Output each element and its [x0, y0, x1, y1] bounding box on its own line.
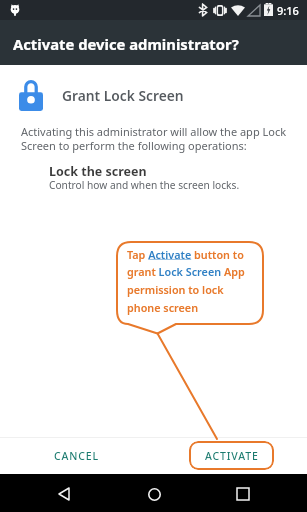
staticText: Grant Lock Screen	[62, 86, 184, 105]
button[interactable]: Home	[139, 479, 169, 509]
staticText: Control how and when the screen locks.	[49, 178, 240, 192]
button[interactable]: Recent apps	[228, 479, 258, 509]
staticText: Tap Activate button to grant Lock Screen…	[127, 247, 253, 315]
staticText: 9:16	[277, 3, 299, 18]
staticText: CANCEL	[54, 449, 99, 463]
button[interactable]: CANCEL	[44, 444, 109, 468]
button[interactable]: Back	[49, 479, 79, 509]
staticText: Activating this administrator will allow…	[21, 124, 287, 153]
staticText: Activate device administrator?	[13, 34, 239, 54]
staticText: Lock the screen	[49, 163, 147, 180]
staticText: ACTIVATE	[205, 449, 259, 463]
button[interactable]: ACTIVATE	[189, 441, 274, 470]
